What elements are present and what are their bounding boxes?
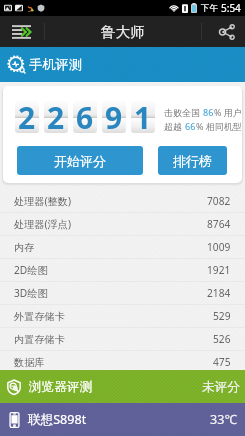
staticText: 1921 [207, 263, 231, 277]
staticText: 处理器(整数) [14, 194, 72, 208]
staticText: 6 [76, 101, 94, 129]
staticText: 超越 [164, 120, 185, 132]
button[interactable]: Share [209, 16, 245, 47]
staticText: 鲁大师 [101, 23, 145, 41]
button[interactable]: 排行榜 [158, 146, 227, 175]
staticText: 排行榜 [173, 153, 212, 169]
staticText: 1009 [207, 240, 231, 254]
button[interactable]: 开始评分 [17, 146, 143, 175]
staticText: 8764 [207, 217, 231, 231]
staticText: 开始评分 [54, 153, 106, 169]
staticText: 外置存储卡 [14, 310, 65, 323]
button[interactable]: 处理器(整数) [0, 190, 245, 212]
button[interactable]: 3D绘图 [0, 282, 245, 304]
staticText: % 相同机型 [196, 120, 242, 132]
staticText: 86 [203, 106, 214, 118]
staticText: 处理器(浮点) [14, 217, 72, 231]
staticText: 3D绘图 [14, 286, 48, 300]
staticText: 33℃ [210, 411, 237, 428]
staticText: 未评分 [202, 379, 240, 395]
button[interactable]: 2D绘图 [0, 259, 245, 281]
staticText: 内置存储卡 [14, 333, 65, 346]
button[interactable]: 联想S898t [0, 403, 245, 436]
staticText: 526 [213, 332, 231, 346]
staticText: 2 [18, 101, 36, 129]
staticText: 击败全国 [164, 106, 203, 118]
staticText: 475 [213, 355, 231, 369]
staticText: 5:54 [221, 1, 241, 15]
button[interactable]: 数据库 [0, 351, 245, 373]
button[interactable]: 内存 [0, 236, 245, 258]
button[interactable]: 处理器(浮点) [0, 213, 245, 235]
button[interactable]: 内置存储卡 [0, 328, 245, 350]
button[interactable]: Menu [0, 16, 43, 47]
staticText: 2184 [207, 286, 231, 300]
staticText: 内存 [14, 241, 35, 254]
staticText: 浏览器评测 [29, 379, 92, 395]
staticText: 联想S898t [28, 411, 87, 428]
button[interactable]: 浏览器评测 [0, 370, 245, 403]
staticText: 下午 [201, 2, 221, 14]
staticText: 9 [105, 101, 123, 129]
staticText: 数据库 [14, 356, 45, 369]
staticText: 7082 [207, 194, 231, 208]
staticText: 2D绘图 [14, 263, 48, 277]
staticText: % 用户 [214, 106, 242, 118]
staticText: 手机评测 [29, 56, 83, 73]
staticText: 1 [134, 101, 152, 129]
button[interactable]: 外置存储卡 [0, 305, 245, 327]
staticText: 529 [213, 309, 231, 323]
staticText: 66 [185, 120, 196, 132]
staticText: 2 [47, 101, 65, 129]
